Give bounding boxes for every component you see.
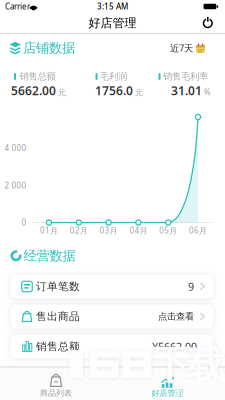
button[interactable]: Log out xyxy=(0,0,225,36)
staticText: 5662.00 xyxy=(11,82,56,98)
button[interactable]: Select date range xyxy=(0,0,225,60)
staticText: 销售毛利率 xyxy=(163,71,208,82)
staticText: 3:15 AM xyxy=(97,1,128,12)
staticText: % xyxy=(204,87,211,97)
staticText: 载 xyxy=(185,340,225,389)
button[interactable]: 订单笔数 xyxy=(10,274,214,299)
staticText: 01月 xyxy=(40,225,58,236)
staticText: 03月 xyxy=(100,225,118,236)
button[interactable]: 商品列表 xyxy=(0,367,112,400)
staticText: 销售总额 xyxy=(36,340,80,353)
staticText: 毛利润 xyxy=(100,71,127,82)
staticText: 售出商品 xyxy=(36,310,80,323)
staticText: 2 000 xyxy=(4,180,26,191)
staticText: 04月 xyxy=(129,225,147,236)
staticText: 店铺数据 xyxy=(23,40,75,56)
staticText: 05月 xyxy=(159,225,177,236)
staticText: 销售总额 xyxy=(19,71,55,82)
staticText: www.it168.com xyxy=(174,376,225,397)
staticText: 经营数据 xyxy=(23,248,75,264)
staticText: 31.01 xyxy=(171,82,202,98)
staticText: 近7天 xyxy=(170,42,193,54)
staticText: 0 xyxy=(21,217,26,228)
staticText: 06月 xyxy=(189,225,207,236)
button[interactable]: 售出商品 xyxy=(10,304,214,329)
staticText: 4 000 xyxy=(4,143,26,153)
staticText: 元 xyxy=(135,88,143,97)
staticText: 下 xyxy=(150,340,190,389)
button[interactable]: 好店管理 xyxy=(112,367,225,400)
staticText: 9 xyxy=(188,279,194,294)
staticText: 元 xyxy=(58,88,66,97)
staticText: 订单笔数 xyxy=(36,280,80,293)
staticText: 好店管理 xyxy=(88,16,136,30)
staticText: 点击查看 xyxy=(158,311,194,322)
staticText: Carrier xyxy=(5,1,30,12)
staticText: 1756.0 xyxy=(95,82,133,98)
staticText: ¥5662.00 xyxy=(152,339,197,354)
button[interactable]: 销售总额 xyxy=(10,334,214,359)
staticText: 好店管理 xyxy=(151,388,183,398)
staticText: 02月 xyxy=(70,225,88,236)
staticText: 商品列表 xyxy=(40,388,72,398)
